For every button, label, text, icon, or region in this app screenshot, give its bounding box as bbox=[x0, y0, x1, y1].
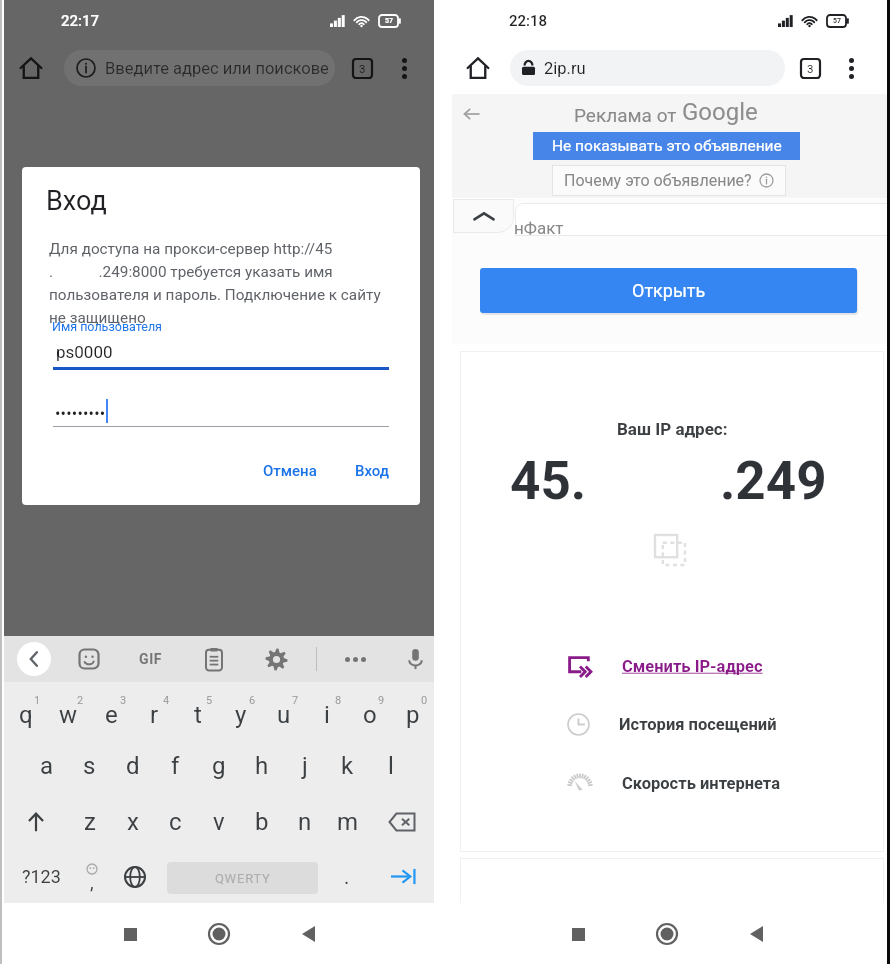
staticText: a bbox=[40, 752, 54, 780]
button[interactable]: Home bbox=[645, 912, 689, 956]
staticText: c bbox=[169, 808, 182, 836]
button[interactable]: 7 bbox=[262, 682, 305, 738]
button[interactable]: Открыть bbox=[480, 268, 857, 313]
button[interactable]: k bbox=[326, 738, 369, 794]
staticText: t bbox=[194, 701, 202, 729]
staticText: Не показывать это объявление bbox=[552, 137, 782, 155]
button[interactable]: m bbox=[326, 794, 369, 850]
staticText: Скорость интернета bbox=[622, 774, 780, 793]
button[interactable]: Collapse ad bbox=[453, 199, 514, 233]
button[interactable]: Home bbox=[460, 50, 496, 86]
staticText: Отмена bbox=[263, 462, 317, 480]
staticText: n bbox=[298, 808, 312, 836]
button[interactable]: Введите адрес или поискове bbox=[64, 50, 335, 86]
staticText: h bbox=[255, 752, 269, 780]
button[interactable]: Почему это объявление? bbox=[552, 165, 786, 196]
staticText: x bbox=[127, 808, 139, 836]
button[interactable]: h bbox=[240, 738, 283, 794]
button[interactable]: b bbox=[240, 794, 283, 850]
button[interactable]: Home bbox=[13, 50, 49, 86]
button[interactable]: Recents bbox=[108, 912, 152, 956]
button[interactable]: f bbox=[154, 738, 197, 794]
button[interactable]: ?123 bbox=[13, 850, 69, 903]
button[interactable]: 3 bbox=[90, 682, 133, 738]
button[interactable]: l bbox=[369, 738, 412, 794]
staticText: f bbox=[171, 752, 180, 780]
button[interactable]: 4 bbox=[133, 682, 176, 738]
button[interactable]: Shift bbox=[4, 794, 68, 850]
button[interactable]: Tabs bbox=[794, 52, 826, 84]
button[interactable]: . bbox=[327, 850, 367, 903]
staticText: p bbox=[406, 701, 420, 729]
button[interactable]: n bbox=[283, 794, 326, 850]
button[interactable]: 1 bbox=[4, 682, 47, 738]
button[interactable]: Change language bbox=[115, 850, 155, 903]
button[interactable]: Backspace bbox=[369, 794, 434, 850]
button[interactable]: 9 bbox=[348, 682, 391, 738]
staticText: 3 bbox=[807, 62, 814, 75]
button[interactable]: More options bbox=[388, 52, 420, 84]
button[interactable]: d bbox=[111, 738, 154, 794]
staticText: ?123 bbox=[22, 866, 61, 887]
staticText: r bbox=[150, 701, 159, 729]
button[interactable]: 8 bbox=[305, 682, 348, 738]
staticText: d bbox=[126, 752, 140, 780]
button[interactable]: Back bbox=[286, 912, 330, 956]
staticText: o bbox=[363, 701, 377, 729]
button[interactable]: Settings bbox=[260, 643, 292, 675]
staticText: 9 bbox=[378, 694, 385, 707]
staticText: j bbox=[302, 752, 308, 780]
button[interactable]: Back bbox=[734, 912, 778, 956]
button[interactable]: Сменить IP-адрес bbox=[567, 650, 763, 682]
staticText: Имя пользователя bbox=[52, 319, 162, 334]
button[interactable]: c bbox=[154, 794, 197, 850]
button[interactable]: 2 bbox=[47, 682, 90, 738]
staticText: y bbox=[235, 701, 247, 729]
button[interactable]: j bbox=[283, 738, 326, 794]
button[interactable]: 6 bbox=[219, 682, 262, 738]
staticText: Для доступа на прокси-сервер http://45 .… bbox=[49, 240, 381, 327]
button[interactable]: Скорость интернета bbox=[567, 767, 780, 799]
button[interactable]: Recents bbox=[556, 912, 600, 956]
button[interactable]: s bbox=[68, 738, 111, 794]
staticText: 1 bbox=[34, 694, 41, 707]
button[interactable]: Back bbox=[460, 102, 484, 126]
button[interactable]: v bbox=[197, 794, 240, 850]
staticText: Открыть bbox=[632, 280, 706, 301]
button[interactable]: Emoji comma bbox=[72, 850, 112, 903]
button[interactable]: Отмена bbox=[255, 455, 325, 487]
staticText: s bbox=[83, 752, 96, 780]
button[interactable]: Stickers bbox=[73, 643, 105, 675]
button[interactable]: Back bbox=[17, 642, 51, 676]
button[interactable]: Clipboard bbox=[198, 643, 230, 675]
button[interactable]: Не показывать это объявление bbox=[533, 132, 800, 160]
staticText: GIF bbox=[139, 651, 163, 667]
button[interactable]: g bbox=[197, 738, 240, 794]
button[interactable]: More bbox=[339, 643, 371, 675]
button[interactable]: Next bbox=[380, 850, 426, 903]
staticText: 5 bbox=[206, 694, 213, 707]
button[interactable]: a bbox=[25, 738, 68, 794]
staticText: 45. bbox=[510, 450, 587, 512]
button[interactable]: Voice input bbox=[399, 643, 431, 675]
staticText: 57 bbox=[385, 17, 394, 25]
button[interactable]: x bbox=[111, 794, 154, 850]
button[interactable]: 5 bbox=[176, 682, 219, 738]
button[interactable]: История посещений bbox=[567, 708, 777, 740]
staticText: .249 bbox=[720, 450, 827, 512]
staticText: Сменить IP-адрес bbox=[622, 657, 763, 676]
button[interactable]: Вход bbox=[347, 455, 398, 487]
button[interactable]: Tabs bbox=[346, 52, 378, 84]
button[interactable]: z bbox=[68, 794, 111, 850]
staticText: QWERTY bbox=[215, 871, 271, 886]
staticText: z bbox=[84, 808, 96, 836]
button[interactable]: 2ip.ru bbox=[510, 50, 785, 86]
staticText: ps0000 bbox=[56, 342, 113, 362]
button[interactable]: QWERTY bbox=[167, 862, 318, 894]
button[interactable]: GIF bbox=[132, 643, 170, 675]
staticText: b bbox=[255, 808, 269, 836]
button[interactable]: Home bbox=[197, 912, 241, 956]
button[interactable]: More options bbox=[835, 52, 867, 84]
button[interactable]: 0 bbox=[391, 682, 434, 738]
staticText: 7 bbox=[292, 694, 299, 707]
